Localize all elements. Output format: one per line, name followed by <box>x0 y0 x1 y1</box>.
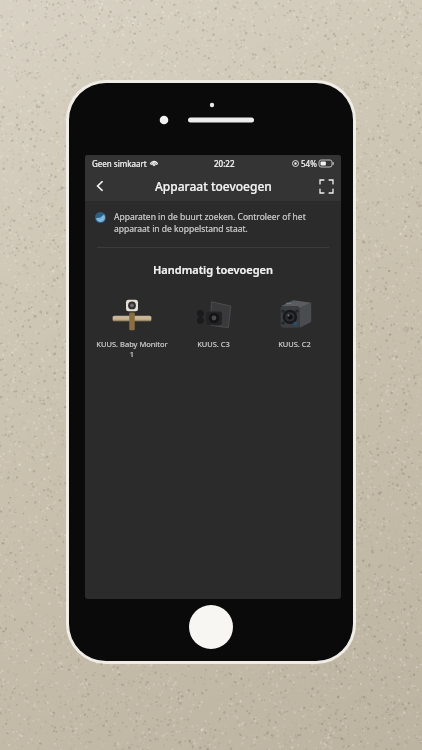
staticText: Geen simkaart <box>92 158 147 169</box>
staticText: 20:22 <box>214 158 235 169</box>
staticText: Apparaat toevoegen <box>155 178 272 194</box>
staticText: 54% <box>301 158 317 169</box>
staticText: Apparaten in de buurt zoeken. Controleer… <box>114 211 327 235</box>
staticText: KUUS. Baby Monitor 1 <box>96 339 168 359</box>
button[interactable]: Back <box>85 171 115 201</box>
button[interactable]: KUUS. Baby Monitor 1 <box>91 293 173 363</box>
button[interactable]: Scan <box>311 171 341 201</box>
button[interactable]: KUUS. C2 <box>254 293 335 353</box>
staticText: KUUS. C3 <box>197 339 230 349</box>
button[interactable]: Home <box>189 605 233 649</box>
staticText: Handmatig toevoegen <box>85 262 341 277</box>
staticText: KUUS. C2 <box>278 339 311 349</box>
button[interactable]: KUUS. C3 <box>173 293 254 353</box>
